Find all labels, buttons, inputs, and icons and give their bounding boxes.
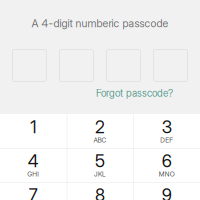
staticText: 7 <box>29 184 38 200</box>
staticText: DEF <box>160 136 173 144</box>
staticText: GHI <box>27 170 39 178</box>
button[interactable]: 2 <box>67 114 133 148</box>
button[interactable]: 5 <box>67 148 133 182</box>
button[interactable]: Forgot passcode? <box>96 87 173 99</box>
staticText: 1 <box>30 116 36 137</box>
button[interactable]: 7 <box>0 182 67 200</box>
button[interactable]: 6 <box>133 148 200 182</box>
staticText: 8 <box>95 184 105 200</box>
staticText: 3 <box>162 116 172 137</box>
button[interactable]: 3 <box>133 114 200 148</box>
button[interactable]: 1 <box>0 114 67 148</box>
staticText: MNO <box>159 170 175 178</box>
staticText: 9 <box>162 184 172 200</box>
staticText: Forgot passcode? <box>96 87 173 99</box>
staticText: JKL <box>94 170 106 178</box>
staticText: 5 <box>95 150 105 171</box>
staticText: 2 <box>95 116 105 137</box>
staticText: 6 <box>162 150 172 171</box>
staticText: ABC <box>93 136 106 144</box>
staticText: 4 <box>28 150 39 171</box>
staticText: A 4-digit numberic passcode <box>31 17 168 30</box>
button[interactable]: 9 <box>133 182 200 200</box>
button[interactable]: 4 <box>0 148 67 182</box>
button[interactable]: 8 <box>67 182 133 200</box>
